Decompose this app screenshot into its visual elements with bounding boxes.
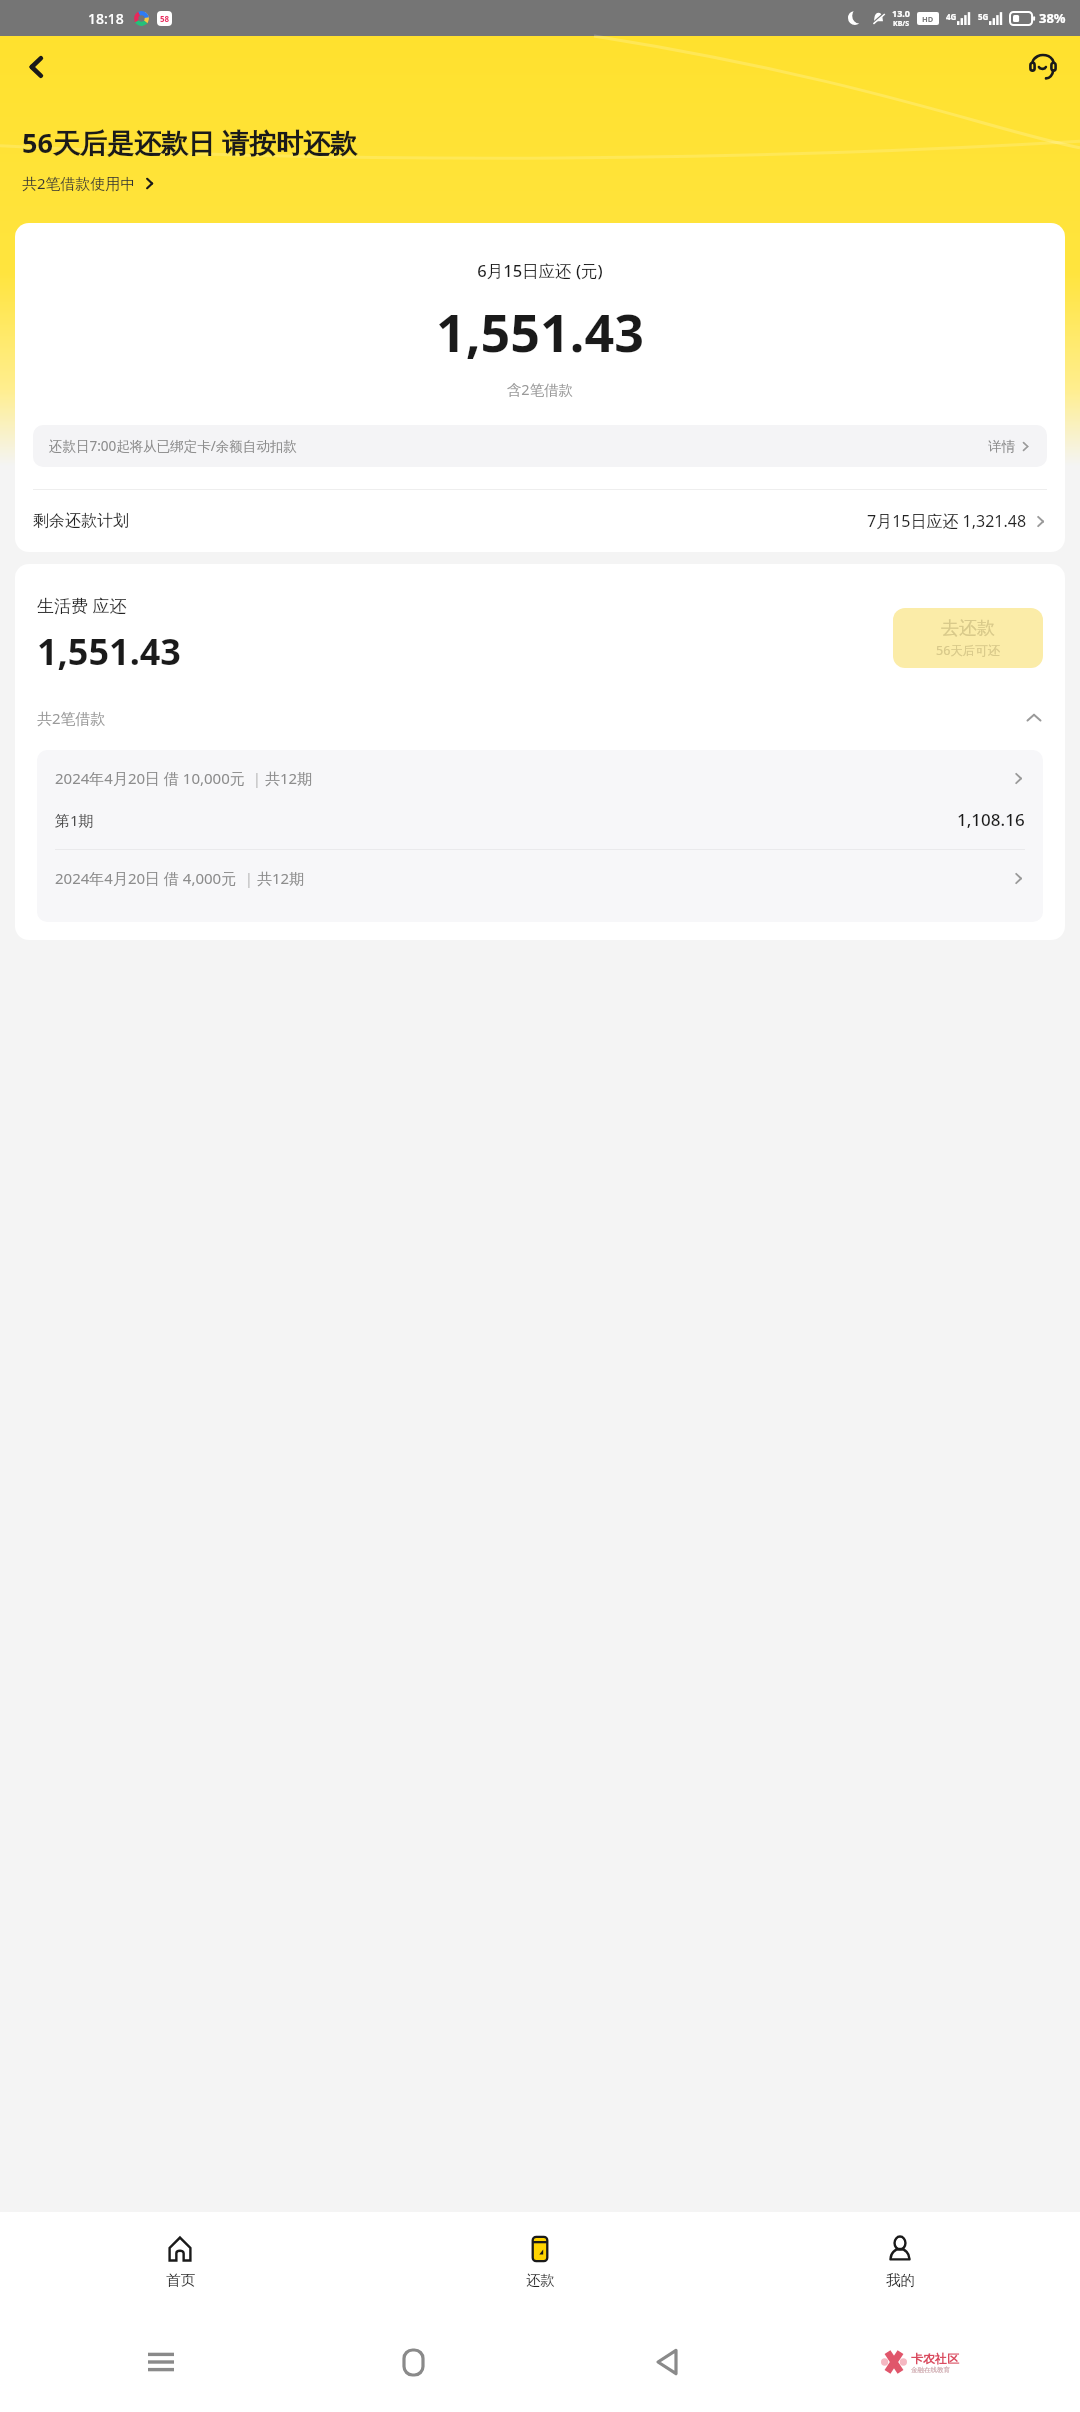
staticText: 1,551.43	[37, 627, 181, 676]
staticText: 4G	[946, 11, 957, 22]
staticText: 58	[160, 13, 170, 24]
button[interactable]: 首页	[0, 2212, 360, 2312]
staticText: 还款日7:00起将从已绑定卡/余额自动扣款	[49, 437, 297, 455]
staticText: 56天后是还款日 请按时还款	[22, 124, 357, 161]
staticText: 18:18	[88, 9, 124, 28]
staticText: 金融在线教育	[911, 2366, 950, 2374]
button[interactable]: Back	[14, 44, 60, 90]
staticText: KB/S	[893, 19, 910, 29]
button[interactable]: Home	[287, 2312, 540, 2412]
button[interactable]: 2024年4月20日 借 10,000元	[37, 750, 1043, 806]
staticText: 1,108.16	[957, 808, 1025, 831]
staticText: 共2笔借款	[37, 708, 106, 728]
button[interactable]: Recents	[34, 2312, 287, 2412]
staticText: 剩余还款计划	[33, 511, 129, 531]
staticText: 56天后可还	[936, 642, 1001, 659]
staticText: 含2笔借款	[15, 379, 1065, 399]
button[interactable]: 还款	[360, 2212, 720, 2312]
button[interactable]: Customer service	[1020, 44, 1066, 90]
button[interactable]: 共2笔借款	[15, 704, 1065, 732]
staticText: 首页	[166, 2271, 195, 2289]
staticText: |	[253, 769, 261, 788]
staticText: 还款	[526, 2271, 555, 2289]
staticText: 1,551.43	[15, 296, 1065, 367]
staticText: 共12期	[257, 868, 305, 888]
staticText: 第1期	[55, 810, 94, 830]
staticText: 7月15日应还 1,321.48	[867, 510, 1027, 532]
button[interactable]: 我的	[720, 2212, 1080, 2312]
staticText: |	[245, 869, 253, 888]
staticText: 我的	[886, 2271, 915, 2289]
staticText: 2024年4月20日 借 10,000元	[55, 768, 245, 788]
staticText: 共12期	[265, 768, 313, 788]
staticText: 6月15日应还 (元)	[15, 259, 1065, 282]
staticText: 详情	[988, 438, 1015, 455]
staticText: 生活费 应还	[37, 594, 127, 617]
staticText: 38%	[1039, 9, 1066, 27]
staticText: 卡农社区	[911, 2351, 959, 2366]
staticText: 去还款	[941, 617, 995, 640]
button[interactable]: 2024年4月20日 借 4,000元	[37, 850, 1043, 906]
button[interactable]: 去还款	[893, 608, 1043, 668]
button[interactable]: 共2笔借款使用中	[22, 173, 156, 193]
staticText: 13.0	[892, 7, 910, 19]
staticText: 2024年4月20日 借 4,000元	[55, 868, 237, 888]
staticText: 5G	[978, 11, 989, 22]
staticText: 共2笔借款使用中	[22, 173, 136, 193]
button[interactable]: 剩余还款计划	[15, 490, 1065, 552]
button[interactable]: 还款日7:00起将从已绑定卡/余额自动扣款	[33, 425, 1047, 467]
button[interactable]: Back	[540, 2312, 793, 2412]
staticText: HD	[922, 14, 934, 24]
